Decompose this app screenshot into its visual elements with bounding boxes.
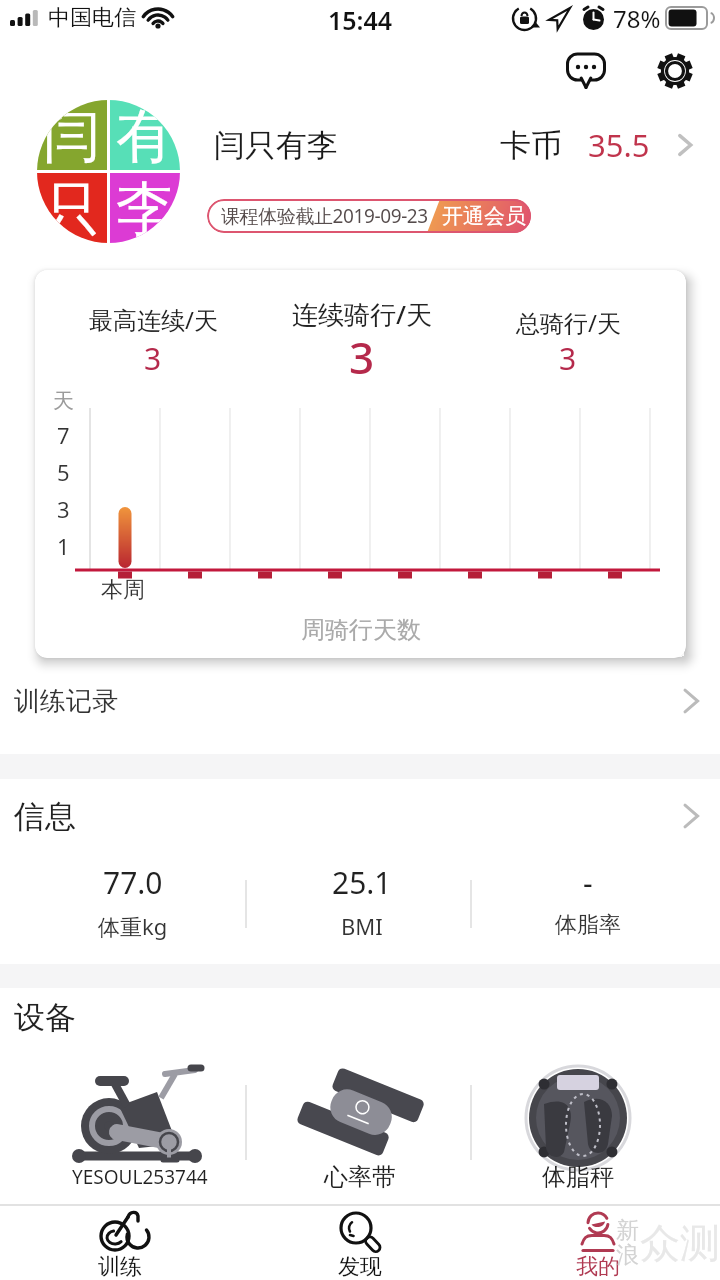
button[interactable]: 课程体验截止2019-09-23 [207,199,531,233]
staticText: 1 [57,531,70,561]
staticText: 我的 [576,1253,620,1280]
button[interactable] [648,44,702,98]
staticText: 闫 [43,100,101,170]
staticText: 总骑行/天 [516,306,621,339]
staticText: 35.5 [588,124,650,166]
staticText: 7 [57,420,70,450]
staticText: 25.1 [332,862,392,903]
staticText: - [583,862,593,903]
staticText: 只 [43,173,101,243]
staticText: 训练 [98,1253,142,1280]
staticText: 闫只有李 [214,126,338,165]
staticText: 最高连续/天 [89,303,218,336]
staticText: 3 [144,338,162,379]
staticText: 15:44 [328,3,393,37]
button[interactable]: 我的 [538,1206,658,1280]
staticText: 心率带 [324,1162,396,1192]
button[interactable]: 卡币 [500,118,712,172]
staticText: 体重kg [98,911,168,941]
staticText: 课程体验截止2019-09-23 [221,203,428,229]
staticText: 新 [616,1216,639,1245]
staticText: 3 [57,494,70,524]
staticText: 体脂率 [555,911,621,939]
staticText: 连续骑行/天 [292,296,433,332]
staticText: YESOUL253744 [72,1164,208,1190]
staticText: 有 [116,100,174,170]
staticText: 训练记录 [14,685,118,718]
staticText: 78% [613,2,661,35]
staticText: 浪 [616,1241,639,1270]
button[interactable] [560,46,612,98]
button[interactable]: 发现 [300,1206,420,1280]
staticText: 设备 [14,998,76,1037]
staticText: 3 [559,338,577,379]
staticText: 开通会员 [442,203,526,229]
button[interactable]: 训练 [60,1206,180,1280]
staticText: 李 [116,173,174,243]
staticText: 信息 [14,797,76,836]
staticText: 天 [53,388,74,414]
staticText: 众测 [640,1218,720,1268]
staticText: 卡币 [500,126,562,165]
button[interactable]: 心率带 [260,1060,460,1200]
staticText: 发现 [338,1253,382,1280]
staticText: 体脂秤 [542,1162,614,1192]
staticText: 本周 [101,576,145,604]
button[interactable]: 体脂秤 [478,1060,678,1200]
staticText: 77.0 [103,862,163,903]
staticText: 3 [349,327,375,387]
button[interactable]: 训练记录 [0,662,720,740]
button[interactable]: 信息 [0,786,720,846]
button[interactable]: 闫 [37,100,180,243]
staticText: 5 [57,457,70,487]
staticText: BMI [341,911,383,941]
button[interactable]: YESOUL253744 [40,1060,240,1200]
staticText: 中国电信 [48,4,136,32]
staticText: 周骑行天数 [301,615,421,645]
